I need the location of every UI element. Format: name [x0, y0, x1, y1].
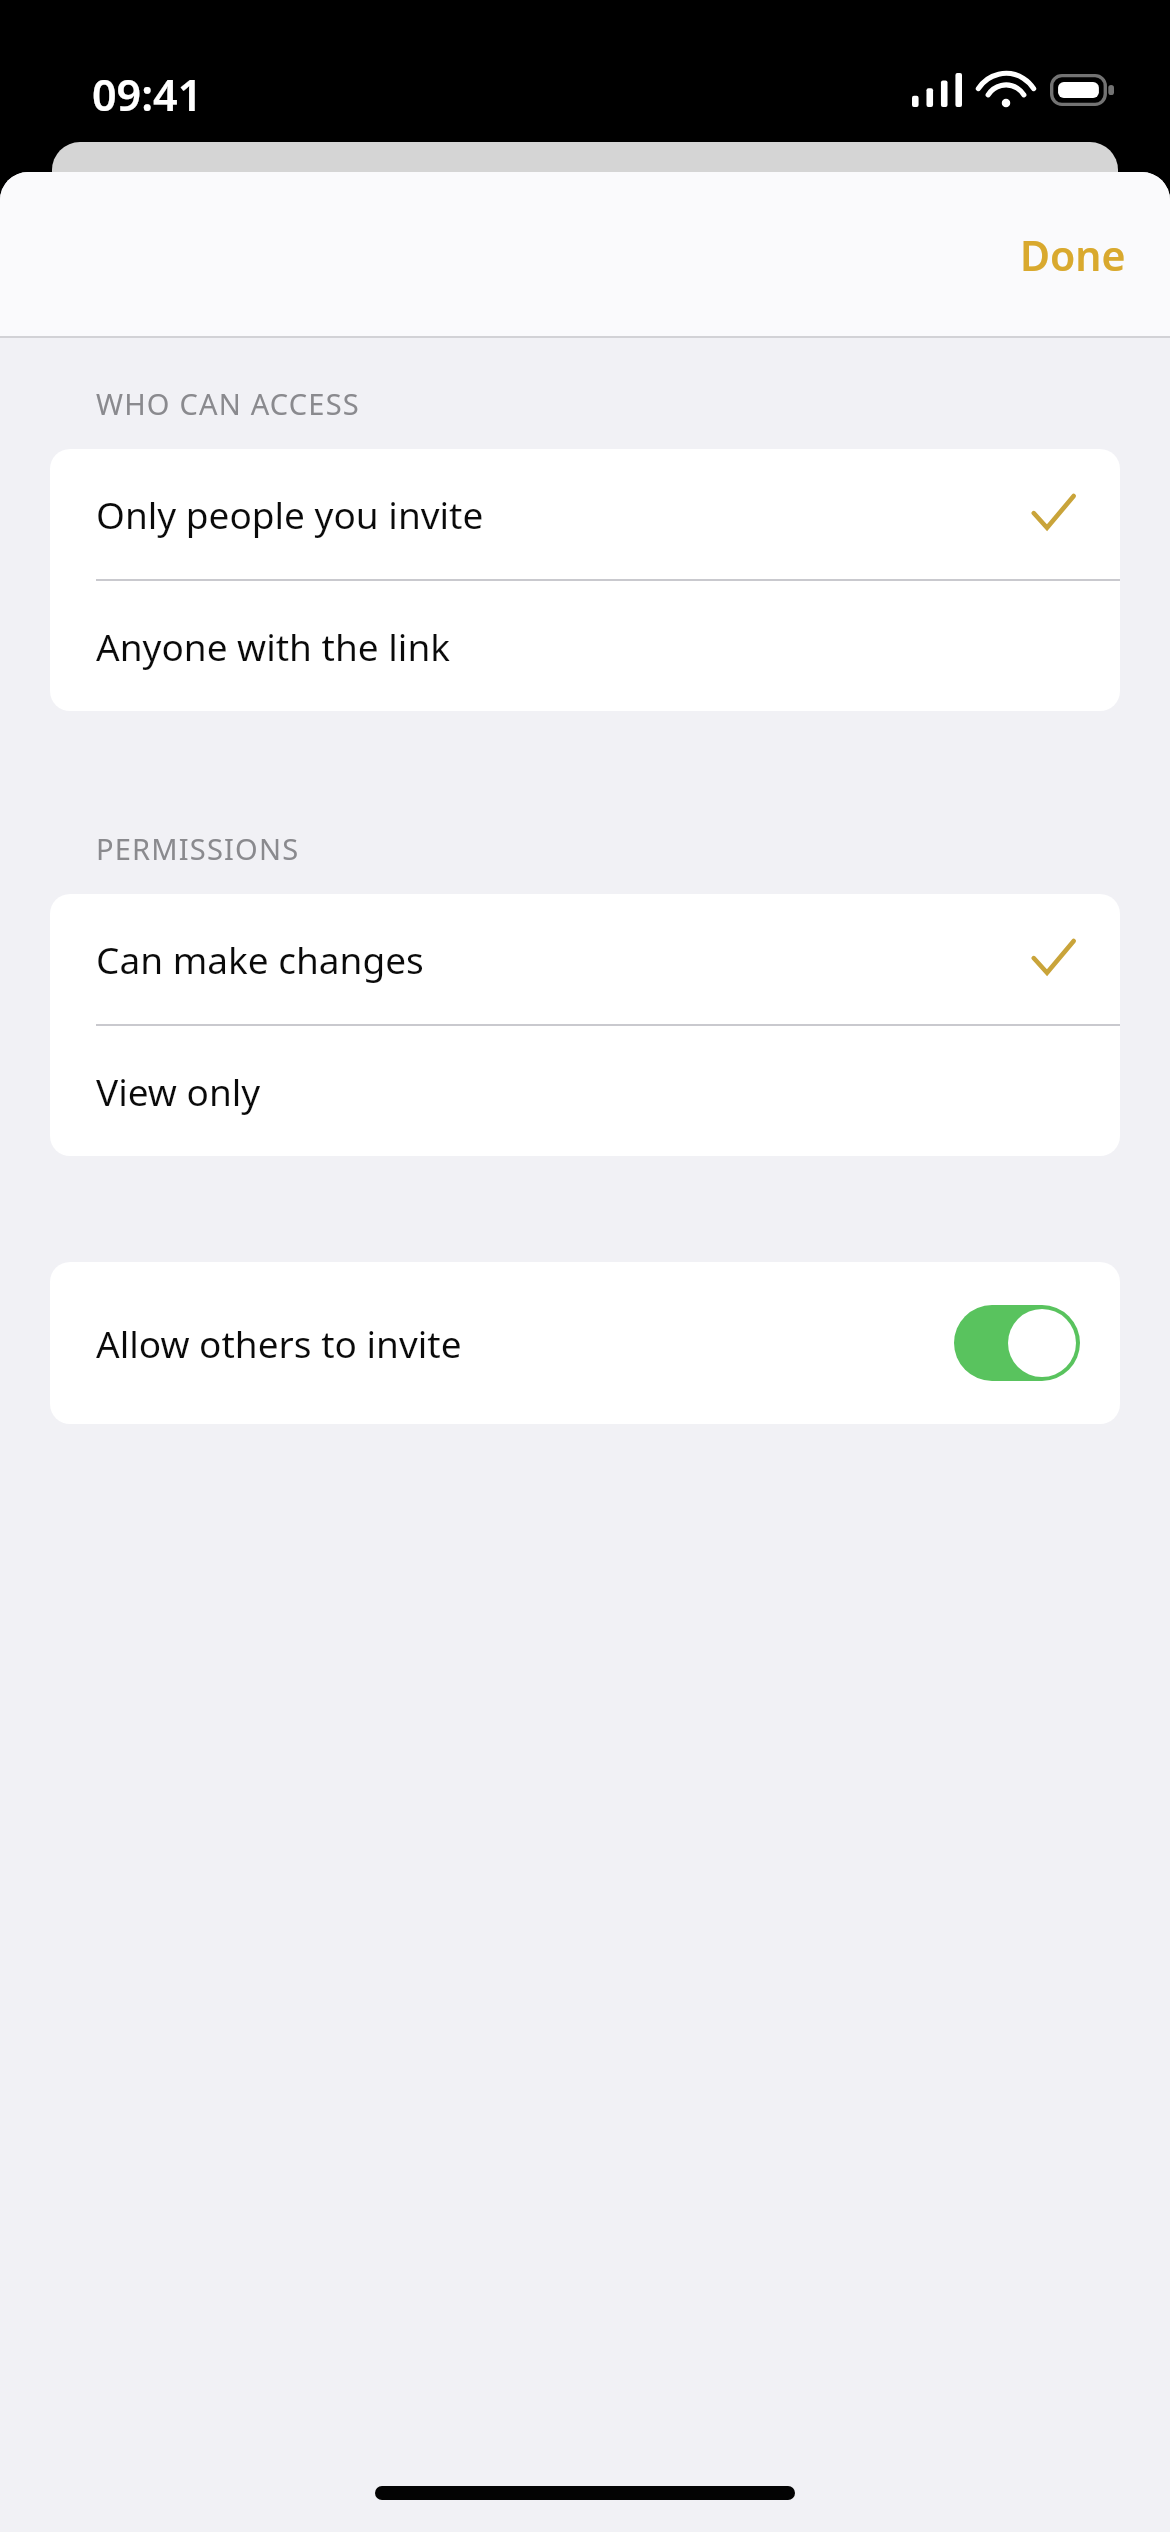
staticText: View only	[96, 1066, 1076, 1116]
button[interactable]: Allow others to invite	[954, 1305, 1080, 1381]
staticText: Allow others to invite	[96, 1318, 954, 1368]
staticText: Done	[1020, 227, 1126, 283]
button[interactable]: Anyone with the link	[50, 581, 1120, 711]
staticText: Anyone with the link	[96, 621, 1076, 671]
staticText: Only people you invite	[96, 489, 1030, 539]
button[interactable]: Allow others to invite	[50, 1262, 1120, 1424]
button[interactable]: Can make changes	[50, 894, 1120, 1024]
staticText: WHO CAN ACCESS	[96, 384, 360, 423]
button[interactable]: View only	[50, 1026, 1120, 1156]
button[interactable]: Done	[1002, 213, 1144, 297]
staticText: Can make changes	[96, 934, 1030, 984]
staticText: 09:41	[92, 65, 203, 124]
staticText: PERMISSIONS	[96, 829, 300, 868]
button[interactable]: Only people you invite	[50, 449, 1120, 579]
